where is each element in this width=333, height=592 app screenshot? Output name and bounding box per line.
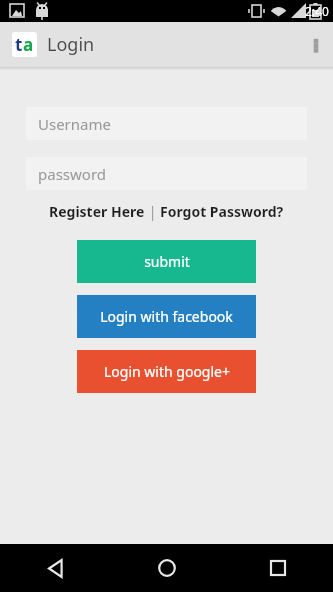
button[interactable]: password [26,157,307,190]
button[interactable]: Login with google+ [77,350,256,393]
button[interactable]: App logo [12,32,37,57]
button[interactable]: Username [26,107,307,140]
button[interactable]: Home [111,544,222,592]
staticText: submit [144,252,190,271]
button[interactable]: Forgot Password? [160,202,284,221]
button[interactable]: submit [77,240,256,283]
staticText: Login with google+ [104,362,230,381]
button[interactable]: Back [0,544,111,592]
button[interactable]: More options [299,22,333,67]
button[interactable]: Register Here [49,202,145,221]
staticText: Login with facebook [100,307,233,326]
staticText: Login [47,32,95,57]
staticText: 2:40 [305,3,329,19]
button[interactable]: Login with facebook [77,295,256,338]
staticText: Username [38,114,111,134]
staticText: Forgot Password? [160,202,284,221]
button[interactable]: Recent apps [222,544,333,592]
staticText: password [38,164,106,184]
staticText: Register Here [49,202,145,221]
staticText: a [23,33,34,56]
staticText: t [15,33,23,56]
staticText: | [145,202,160,221]
